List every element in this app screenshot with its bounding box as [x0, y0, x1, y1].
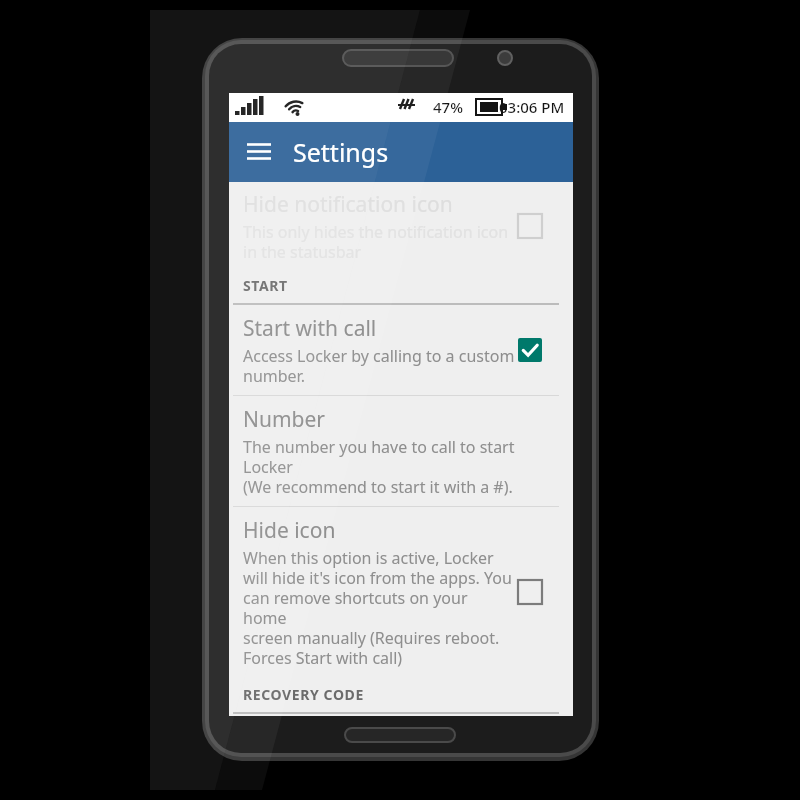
staticText: 03:06 PM — [499, 97, 565, 117]
staticText: Hide notification icon — [243, 190, 453, 219]
button[interactable]: Start with call — [229, 305, 573, 395]
button[interactable]: Toggle setting — [515, 211, 545, 241]
staticText: Start with call — [243, 314, 377, 343]
staticText: Hide icon — [243, 516, 336, 545]
staticText: 47% — [433, 97, 463, 117]
staticText: This only hides the notification icon in… — [243, 221, 509, 262]
button[interactable]: Toggle setting — [515, 335, 545, 365]
button[interactable]: Hide icon — [229, 507, 573, 677]
staticText: Access Locker by calling to a custom num… — [243, 345, 515, 386]
staticText: Settings — [293, 135, 389, 169]
staticText: RECOVERY CODE — [243, 685, 364, 704]
staticText: START — [243, 276, 288, 295]
staticText: Number — [243, 405, 326, 434]
button[interactable]: Open navigation menu — [237, 130, 281, 174]
button[interactable]: Hide notification icon — [229, 182, 573, 268]
button[interactable]: Number — [229, 396, 573, 506]
staticText: When this option is active, Locker will … — [243, 547, 515, 668]
button[interactable]: Toggle setting — [515, 577, 545, 607]
staticText: The number you have to call to start Loc… — [243, 436, 561, 497]
